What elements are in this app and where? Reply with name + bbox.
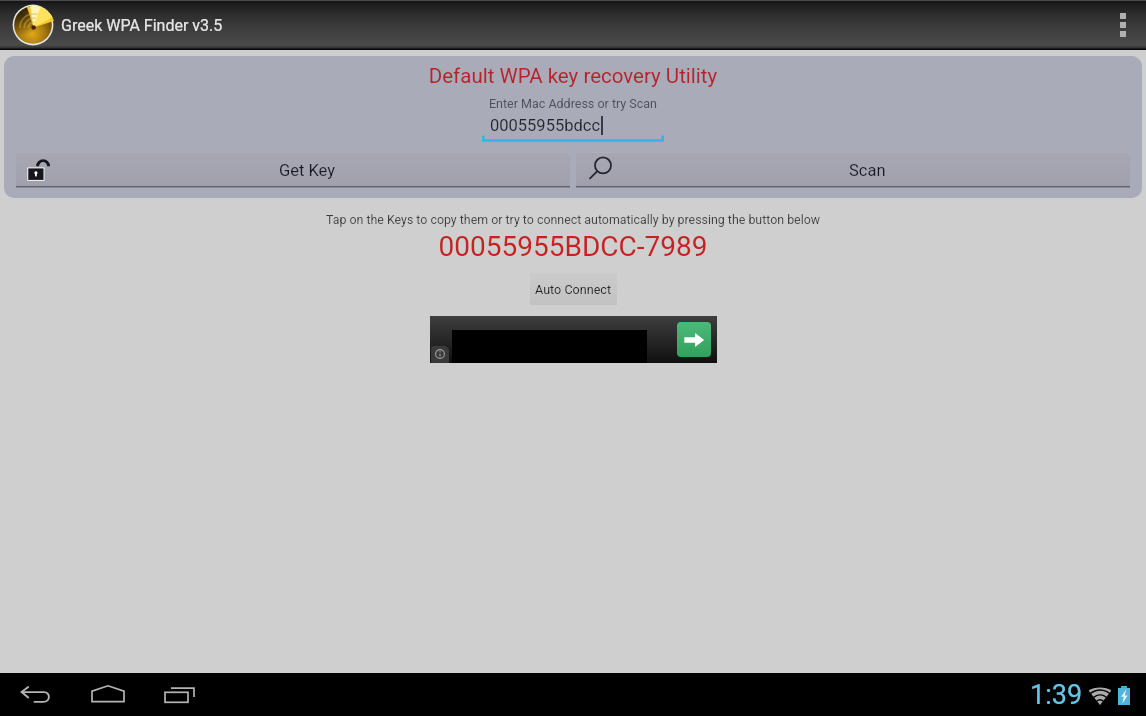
staticText: Greek WPA Finder v3.5 bbox=[61, 16, 223, 35]
staticText: Enter Mac Address or try Scan bbox=[4, 96, 1142, 111]
staticText: Scan bbox=[849, 161, 886, 180]
staticText: Get Key bbox=[279, 161, 336, 180]
staticText: 1:39 bbox=[1030, 679, 1083, 711]
staticText: 00055955bdcc bbox=[490, 116, 601, 135]
button[interactable]: 00055955BDCC-7989 bbox=[0, 230, 1146, 263]
other: Ad info bbox=[431, 346, 449, 363]
button[interactable]: Advertisement bbox=[430, 316, 717, 363]
button[interactable]: Mac address input bbox=[482, 116, 664, 142]
staticText: Tap on the Keys to copy them or try to c… bbox=[0, 212, 1146, 227]
button[interactable]: Recent apps bbox=[156, 673, 204, 716]
staticText: Auto Connect bbox=[535, 282, 612, 297]
staticText: Default WPA key recovery Utility bbox=[4, 64, 1142, 88]
button[interactable]: Auto Connect bbox=[530, 273, 617, 305]
button[interactable]: Home bbox=[84, 673, 132, 716]
button[interactable]: Back bbox=[12, 673, 60, 716]
button[interactable]: Scan bbox=[576, 152, 1130, 188]
button[interactable]: More options bbox=[1100, 0, 1146, 50]
button[interactable]: Get Key bbox=[16, 152, 570, 188]
